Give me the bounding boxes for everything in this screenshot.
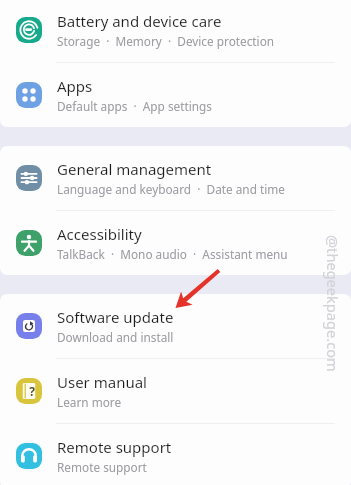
staticText: Remote support xyxy=(57,437,172,457)
button[interactable]: Apps xyxy=(0,63,351,127)
staticText: Accessibility xyxy=(57,224,142,244)
staticText: Apps xyxy=(57,76,93,96)
staticText: Software update xyxy=(57,307,174,327)
button[interactable]: Software update xyxy=(0,294,351,358)
button[interactable]: User manual xyxy=(0,359,351,423)
staticText: Battery and device care xyxy=(57,11,222,31)
staticText: Download and install xyxy=(57,329,174,345)
staticText: User manual xyxy=(57,372,147,392)
button[interactable]: Battery and device care xyxy=(0,0,351,62)
button[interactable]: Remote support xyxy=(0,424,351,485)
button[interactable]: Accessibility xyxy=(0,211,351,275)
staticText: Default apps · App settings xyxy=(57,98,212,114)
staticText: Language and keyboard · Date and time xyxy=(57,181,285,197)
staticText: @thegeekpage.com xyxy=(323,235,343,372)
staticText: TalkBack · Mono audio · Assistant menu xyxy=(57,246,288,262)
staticText: Storage · Memory · Device protection xyxy=(57,33,275,49)
staticText: General management xyxy=(57,159,212,179)
staticText: Remote support xyxy=(57,459,147,475)
staticText: Learn more xyxy=(57,394,122,410)
button[interactable]: General management xyxy=(0,146,351,210)
